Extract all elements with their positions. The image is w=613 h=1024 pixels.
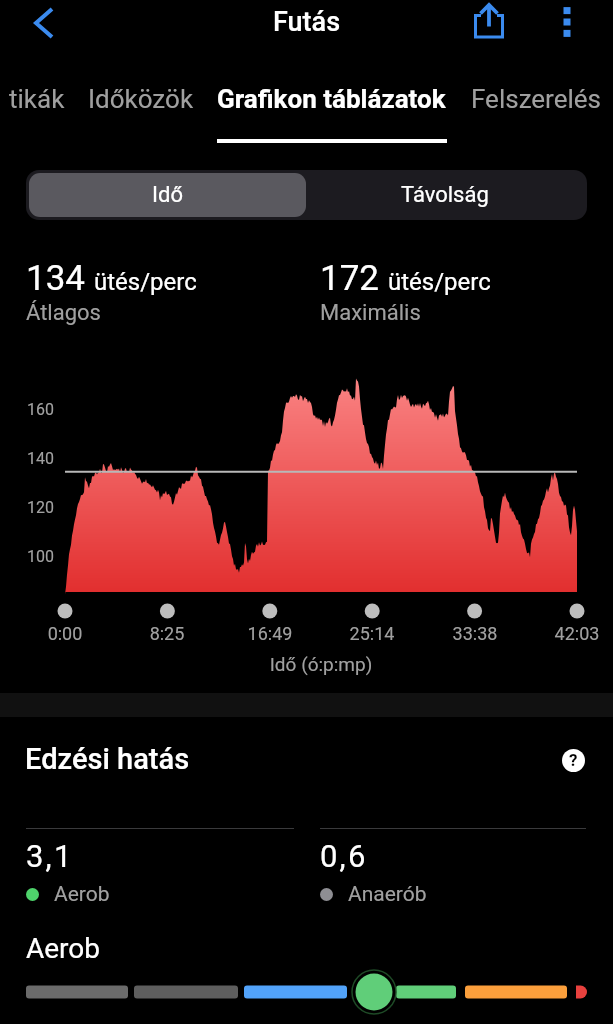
button[interactable]: Back: [20, 0, 68, 48]
staticText: 134: [26, 258, 86, 299]
staticText: ütés/perc: [94, 268, 197, 296]
button[interactable]: Idő: [29, 173, 306, 217]
staticText: Aerob: [54, 882, 110, 906]
staticText: Távolság: [401, 182, 489, 208]
button[interactable]: Help: [551, 738, 596, 783]
staticText: 120: [20, 498, 54, 517]
staticText: 42:03: [532, 623, 613, 644]
staticText: Idő (ó:p:mp): [20, 653, 613, 675]
staticText: 25:14: [327, 623, 417, 644]
staticText: 172: [320, 258, 380, 299]
staticText: 16:49: [225, 623, 315, 644]
staticText: Anaerób: [348, 882, 427, 906]
staticText: Grafikon táblázatok: [217, 84, 446, 114]
staticText: 140: [20, 449, 54, 468]
button[interactable]: Grafikon táblázatok: [202, 69, 461, 129]
button[interactable]: tikák: [0, 69, 81, 129]
staticText: 0,6: [320, 838, 368, 874]
staticText: 0:00: [20, 623, 110, 644]
button[interactable]: More options: [543, 0, 591, 47]
staticText: 160: [20, 400, 54, 419]
button[interactable]: Training effect zones: [20, 973, 593, 1013]
staticText: ütés/perc: [388, 268, 491, 296]
button[interactable]: Távolság: [306, 173, 584, 217]
staticText: Időközök: [88, 84, 194, 114]
button[interactable]: Felszerelés: [453, 69, 613, 129]
button[interactable]: Share: [465, 0, 513, 46]
button[interactable]: Időközök: [74, 69, 208, 129]
staticText: tikák: [9, 84, 65, 114]
staticText: 8:25: [122, 623, 212, 644]
staticText: Futás: [273, 6, 341, 38]
staticText: Edzési hatás: [25, 742, 190, 776]
staticText: Aerob: [26, 932, 101, 965]
staticText: Maximális: [320, 300, 421, 326]
staticText: 33:38: [430, 623, 520, 644]
staticText: ?: [569, 750, 578, 770]
staticText: 3,1: [26, 838, 74, 874]
staticText: Átlagos: [26, 300, 101, 326]
staticText: Idő: [152, 182, 183, 208]
staticText: Felszerelés: [471, 84, 601, 114]
staticText: 100: [20, 547, 54, 566]
